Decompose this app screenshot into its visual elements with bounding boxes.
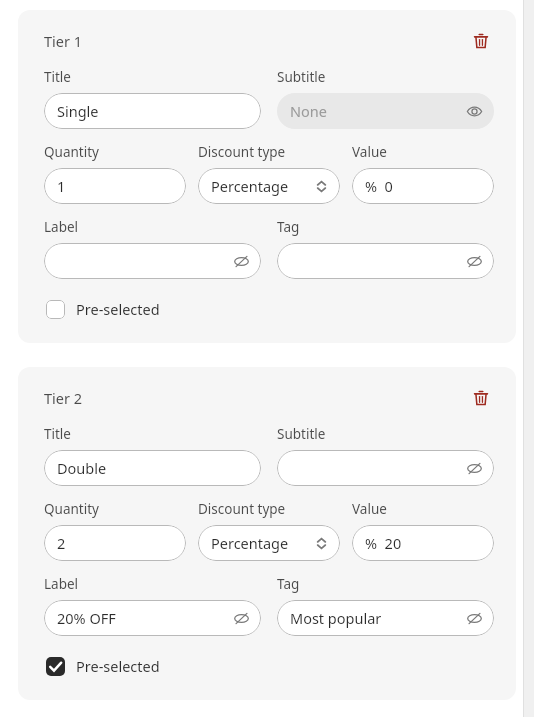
staticText: Single xyxy=(57,101,99,121)
other: Hidden xyxy=(233,610,250,627)
staticText: Percentage xyxy=(211,176,289,196)
button[interactable]: Hidden xyxy=(44,243,261,279)
staticText: Discount type xyxy=(198,143,286,161)
other: Hidden xyxy=(466,460,483,477)
staticText: 20% OFF xyxy=(57,608,116,628)
other: Visible xyxy=(466,103,483,120)
staticText: Label xyxy=(44,218,79,236)
button[interactable]: Double xyxy=(44,450,261,486)
staticText: Subtitle xyxy=(277,68,326,86)
button[interactable]: 1 xyxy=(44,168,186,204)
staticText: Label xyxy=(44,575,79,593)
staticText: 1 xyxy=(57,176,66,196)
button[interactable]: Single xyxy=(44,93,261,129)
staticText: Quantity xyxy=(44,143,99,161)
button[interactable]: None xyxy=(277,93,494,129)
staticText: Quantity xyxy=(44,500,99,518)
staticText: Title xyxy=(44,68,71,86)
staticText: Percentage xyxy=(211,533,289,553)
button[interactable]: Pre-selected xyxy=(44,654,162,678)
other: Hidden xyxy=(233,253,250,270)
staticText: Tier 1 xyxy=(44,31,83,51)
button[interactable]: Percentage xyxy=(198,525,340,561)
button[interactable]: Pre-selected xyxy=(44,297,162,321)
staticText: Pre-selected xyxy=(76,299,160,319)
button[interactable]: Percentage xyxy=(198,168,340,204)
staticText: Discount type xyxy=(198,500,286,518)
button[interactable]: Delete Tier 1 xyxy=(468,28,494,54)
staticText: Most popular xyxy=(290,608,382,628)
staticText: Title xyxy=(44,425,71,443)
other: Select option xyxy=(314,179,329,194)
staticText: None xyxy=(290,101,327,121)
staticText: Tier 2 xyxy=(44,388,83,408)
staticText: Value xyxy=(352,500,387,518)
button[interactable]: % 0 xyxy=(352,168,494,204)
staticText: Double xyxy=(57,458,107,478)
staticText: Pre-selected xyxy=(76,656,160,676)
staticText: % 20 xyxy=(365,533,402,553)
button[interactable]: 20% OFF xyxy=(44,600,261,636)
staticText: Tag xyxy=(277,575,300,593)
staticText: Subtitle xyxy=(277,425,326,443)
button[interactable]: Hidden xyxy=(277,243,494,279)
other: Hidden xyxy=(466,610,483,627)
button[interactable]: Hidden xyxy=(277,450,494,486)
button[interactable]: % 20 xyxy=(352,525,494,561)
other: Hidden xyxy=(466,253,483,270)
staticText: % 0 xyxy=(365,176,393,196)
other: Select option xyxy=(314,536,329,551)
staticText: 2 xyxy=(57,533,66,553)
button[interactable]: Most popular xyxy=(277,600,494,636)
button[interactable]: Delete Tier 2 xyxy=(468,385,494,411)
button[interactable]: 2 xyxy=(44,525,186,561)
staticText: Value xyxy=(352,143,387,161)
staticText: Tag xyxy=(277,218,300,236)
